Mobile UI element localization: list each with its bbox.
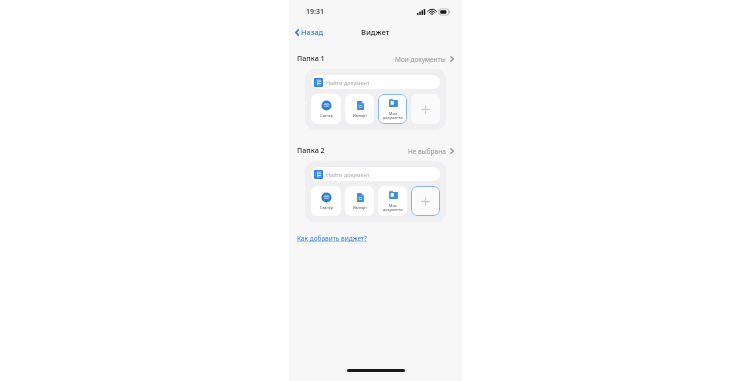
staticText: Найти документ	[326, 171, 370, 178]
button[interactable]: Мои документы	[378, 94, 407, 124]
staticText: Папка 2	[297, 146, 325, 156]
staticText: Мои документы	[383, 111, 403, 120]
staticText: Импорт	[353, 113, 367, 118]
staticText: Назад	[301, 27, 324, 37]
button[interactable]: Импорт	[345, 186, 374, 216]
button[interactable]: Как добавить виджет?	[297, 232, 367, 245]
button[interactable]: Импорт	[345, 94, 374, 124]
staticText: Найти документ	[326, 79, 370, 86]
button[interactable]: Назад	[289, 24, 330, 40]
button[interactable]: Папка 2	[289, 143, 462, 159]
staticText: Импорт	[353, 205, 367, 210]
button[interactable]: Найти документ	[311, 75, 440, 89]
button[interactable]: Добавить виджет	[411, 94, 440, 124]
button[interactable]: Добавить виджет	[411, 186, 440, 216]
staticText: Не выбрана	[408, 147, 446, 156]
staticText: Сканер	[320, 113, 333, 118]
button[interactable]: Мои документы	[378, 186, 407, 216]
staticText: Мои документы	[395, 55, 446, 64]
button[interactable]: Сканер	[311, 186, 341, 216]
button[interactable]: Найти документ	[311, 167, 440, 181]
staticText: Сканер	[320, 205, 333, 210]
button[interactable]: Папка 1	[289, 51, 462, 67]
staticText: Мои документы	[383, 203, 403, 212]
button[interactable]: Сканер	[311, 94, 341, 124]
staticText: Виджет	[361, 27, 390, 37]
staticText: 19:31	[306, 7, 324, 17]
staticText: Папка 1	[297, 54, 325, 64]
staticText: Как добавить виджет?	[297, 234, 367, 243]
